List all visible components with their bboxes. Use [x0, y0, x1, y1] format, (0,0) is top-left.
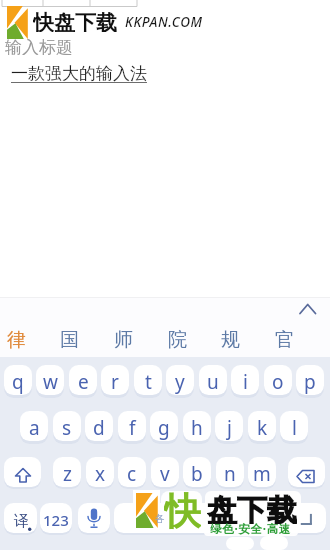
button[interactable]: 123: [40, 503, 72, 533]
button[interactable]: 师: [98, 327, 148, 352]
staticText: 师: [114, 328, 133, 352]
staticText: s: [62, 415, 72, 441]
button[interactable]: 律: [0, 327, 41, 352]
staticText: KKPAN.COM: [125, 13, 203, 29]
button[interactable]: f: [118, 411, 146, 441]
staticText: a: [29, 415, 40, 441]
staticText: k: [257, 415, 268, 441]
staticText: d: [93, 415, 105, 441]
staticText: 快: [164, 488, 201, 530]
staticText: 规: [221, 328, 240, 352]
staticText: l: [292, 415, 297, 441]
button[interactable]: g: [150, 411, 178, 441]
staticText: 译: [14, 512, 29, 531]
staticText: 输入标题: [5, 37, 73, 55]
button[interactable]: d: [85, 411, 113, 441]
button[interactable]: l: [280, 411, 308, 441]
button[interactable]: k: [248, 411, 276, 441]
button[interactable]: x: [86, 457, 114, 487]
button[interactable]: w: [36, 365, 64, 395]
staticText: b: [191, 461, 203, 487]
staticText: q: [12, 369, 24, 395]
button[interactable]: b: [183, 457, 211, 487]
staticText: 各: [155, 512, 165, 525]
staticText: r: [111, 369, 119, 395]
button[interactable]: u: [199, 365, 227, 395]
staticText: 快盘下载: [33, 10, 117, 32]
staticText: t: [145, 369, 152, 395]
button[interactable]: v: [151, 457, 179, 487]
staticText: 国: [60, 328, 79, 352]
button[interactable]: 国: [44, 327, 94, 352]
staticText: f: [129, 415, 136, 441]
staticText: y: [175, 369, 185, 395]
button[interactable]: h: [183, 411, 211, 441]
button[interactable]: q: [4, 365, 32, 395]
staticText: u: [207, 369, 219, 395]
staticText: p: [304, 369, 316, 395]
button[interactable]: [250, 503, 326, 533]
staticText: v: [160, 461, 170, 487]
staticText: 123: [43, 510, 69, 530]
button[interactable]: n: [216, 457, 244, 487]
staticText: w: [43, 369, 58, 395]
button[interactable]: [114, 503, 246, 533]
button[interactable]: e: [69, 365, 97, 395]
staticText: n: [224, 461, 236, 487]
button[interactable]: [293, 297, 323, 321]
staticText: e: [78, 369, 89, 395]
button[interactable]: 规: [205, 327, 255, 352]
button[interactable]: o: [264, 365, 292, 395]
button[interactable]: c: [118, 457, 146, 487]
staticText: c: [127, 461, 137, 487]
button[interactable]: t: [134, 365, 162, 395]
button[interactable]: 译: [4, 503, 37, 533]
staticText: 一款强大的输入法: [11, 63, 147, 83]
staticText: m: [253, 461, 271, 487]
button[interactable]: p: [296, 365, 324, 395]
button[interactable]: [288, 457, 325, 487]
staticText: g: [158, 415, 170, 441]
staticText: 院: [168, 328, 187, 352]
button[interactable]: [78, 503, 110, 533]
button[interactable]: y: [166, 365, 194, 395]
staticText: h: [191, 415, 203, 441]
staticText: z: [63, 461, 72, 487]
button[interactable]: a: [20, 411, 48, 441]
button[interactable]: 院: [152, 327, 202, 352]
staticText: x: [95, 461, 106, 487]
button[interactable]: z: [53, 457, 81, 487]
staticText: 盘下载: [207, 492, 297, 524]
button[interactable]: j: [215, 411, 243, 441]
staticText: 律: [7, 328, 26, 352]
button[interactable]: [4, 457, 41, 487]
staticText: 绿色·安全·高速: [210, 521, 292, 536]
staticText: 官: [275, 328, 294, 352]
button[interactable]: r: [101, 365, 129, 395]
button[interactable]: m: [248, 457, 276, 487]
button[interactable]: 官: [259, 327, 309, 352]
button[interactable]: s: [53, 411, 81, 441]
staticText: o: [272, 369, 284, 395]
staticText: j: [227, 415, 232, 441]
button[interactable]: i: [231, 365, 259, 395]
staticText: i: [243, 369, 248, 395]
